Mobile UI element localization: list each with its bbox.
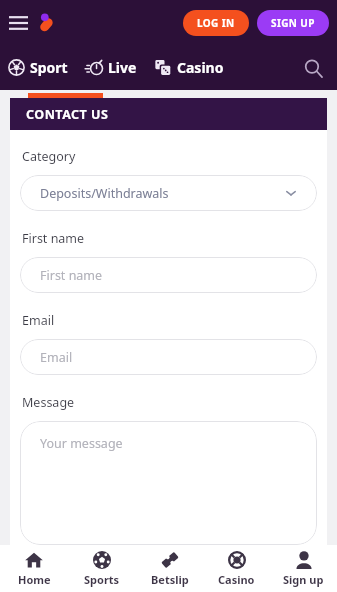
- staticText: Category: [22, 148, 76, 165]
- button[interactable]: Email: [20, 339, 317, 375]
- staticText: SIGN UP: [271, 16, 315, 30]
- staticText: LOG IN: [197, 16, 235, 30]
- button[interactable]: Betslip: [136, 545, 203, 592]
- staticText: Your message: [40, 435, 123, 452]
- button[interactable]: Sign up: [270, 545, 337, 592]
- button[interactable]: Live: [82, 54, 141, 81]
- staticText: Email: [40, 349, 73, 366]
- staticText: CONTACT US: [26, 106, 109, 123]
- button[interactable]: Deposits/Withdrawals: [20, 175, 317, 211]
- staticText: Live: [108, 58, 137, 77]
- staticText: Casino: [177, 58, 224, 77]
- button[interactable]: Sports: [68, 545, 136, 592]
- staticText: Betslip: [151, 572, 189, 587]
- button[interactable]: Casino: [151, 54, 228, 81]
- staticText: Deposits/Withdrawals: [40, 185, 169, 202]
- staticText: Sport: [30, 58, 68, 77]
- button[interactable]: Your message: [20, 421, 317, 545]
- staticText: Home: [18, 572, 51, 587]
- staticText: First name: [22, 230, 85, 247]
- staticText: Message: [22, 394, 75, 411]
- button[interactable]: Home: [0, 545, 68, 592]
- staticText: First name: [40, 267, 103, 284]
- button[interactable]: LOG IN: [183, 10, 249, 36]
- button[interactable]: Casino: [203, 545, 270, 592]
- staticText: Sign up: [283, 572, 324, 587]
- button[interactable]: Search: [297, 52, 329, 84]
- button[interactable]: Menu: [3, 8, 33, 38]
- button[interactable]: Sport: [4, 54, 72, 81]
- staticText: Sports: [84, 572, 120, 587]
- button[interactable]: First name: [20, 257, 317, 293]
- staticText: Casino: [218, 572, 255, 587]
- button[interactable]: SIGN UP: [257, 10, 329, 36]
- button[interactable]: Home logo: [33, 9, 61, 37]
- staticText: Email: [22, 312, 55, 329]
